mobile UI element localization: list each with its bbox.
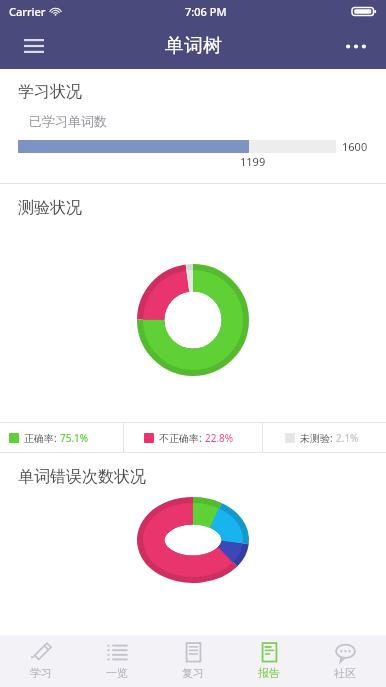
button[interactable]: 报告 [234,635,304,687]
button[interactable]: 不正确率: [124,423,262,452]
staticText: 未测验: [300,431,336,445]
button[interactable]: 社区 [310,635,380,687]
staticText: 学习 [30,666,52,680]
staticText: 报告 [258,666,280,680]
button[interactable]: 复习 [158,635,228,687]
staticText: 7:06 PM [185,4,227,19]
staticText: 1600 [342,139,368,154]
staticText: 测验状况 [18,198,82,218]
staticText: 不正确率: [159,431,205,445]
staticText: 正确率: [24,431,60,445]
button[interactable]: 正确率: [0,423,123,452]
staticText: 单词树 [165,34,222,58]
button[interactable]: More options [334,24,378,68]
staticText: Carrier [9,4,46,19]
staticText: 1199 [240,154,266,169]
staticText: 复习 [182,666,204,680]
button[interactable]: 未测验: [263,423,386,452]
button[interactable]: Menu [12,24,56,68]
button[interactable]: 一览 [82,635,152,687]
staticText: 社区 [334,666,356,680]
staticText: 单词错误次数状况 [18,467,146,487]
staticText: 一览 [106,666,128,680]
button[interactable]: 学习 [6,635,76,687]
staticText: 已学习单词数 [29,113,107,129]
staticText: 2.1% [336,431,359,445]
staticText: 75.1% [60,431,89,445]
staticText: 学习状况 [18,82,82,102]
staticText: 22.8% [205,431,234,445]
